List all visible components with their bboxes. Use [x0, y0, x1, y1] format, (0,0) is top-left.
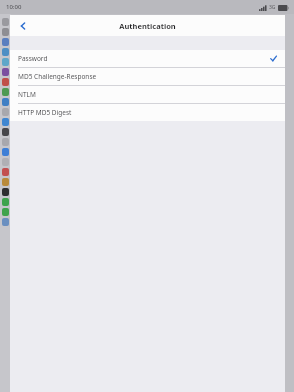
button[interactable]: NTLM: [10, 86, 285, 103]
staticText: HTTP MD5 Digest: [18, 108, 72, 117]
button[interactable]: Back: [10, 15, 36, 36]
button[interactable]: Password: [10, 50, 285, 67]
staticText: Authentication: [119, 21, 176, 31]
staticText: NTLM: [18, 90, 36, 99]
staticText: 3G: [269, 4, 276, 11]
button[interactable]: HTTP MD5 Digest: [10, 104, 285, 121]
staticText: 10:00: [6, 3, 22, 11]
staticText: MD5 Challenge-Response: [18, 72, 97, 81]
staticText: Password: [18, 54, 48, 63]
button[interactable]: MD5 Challenge-Response: [10, 68, 285, 85]
